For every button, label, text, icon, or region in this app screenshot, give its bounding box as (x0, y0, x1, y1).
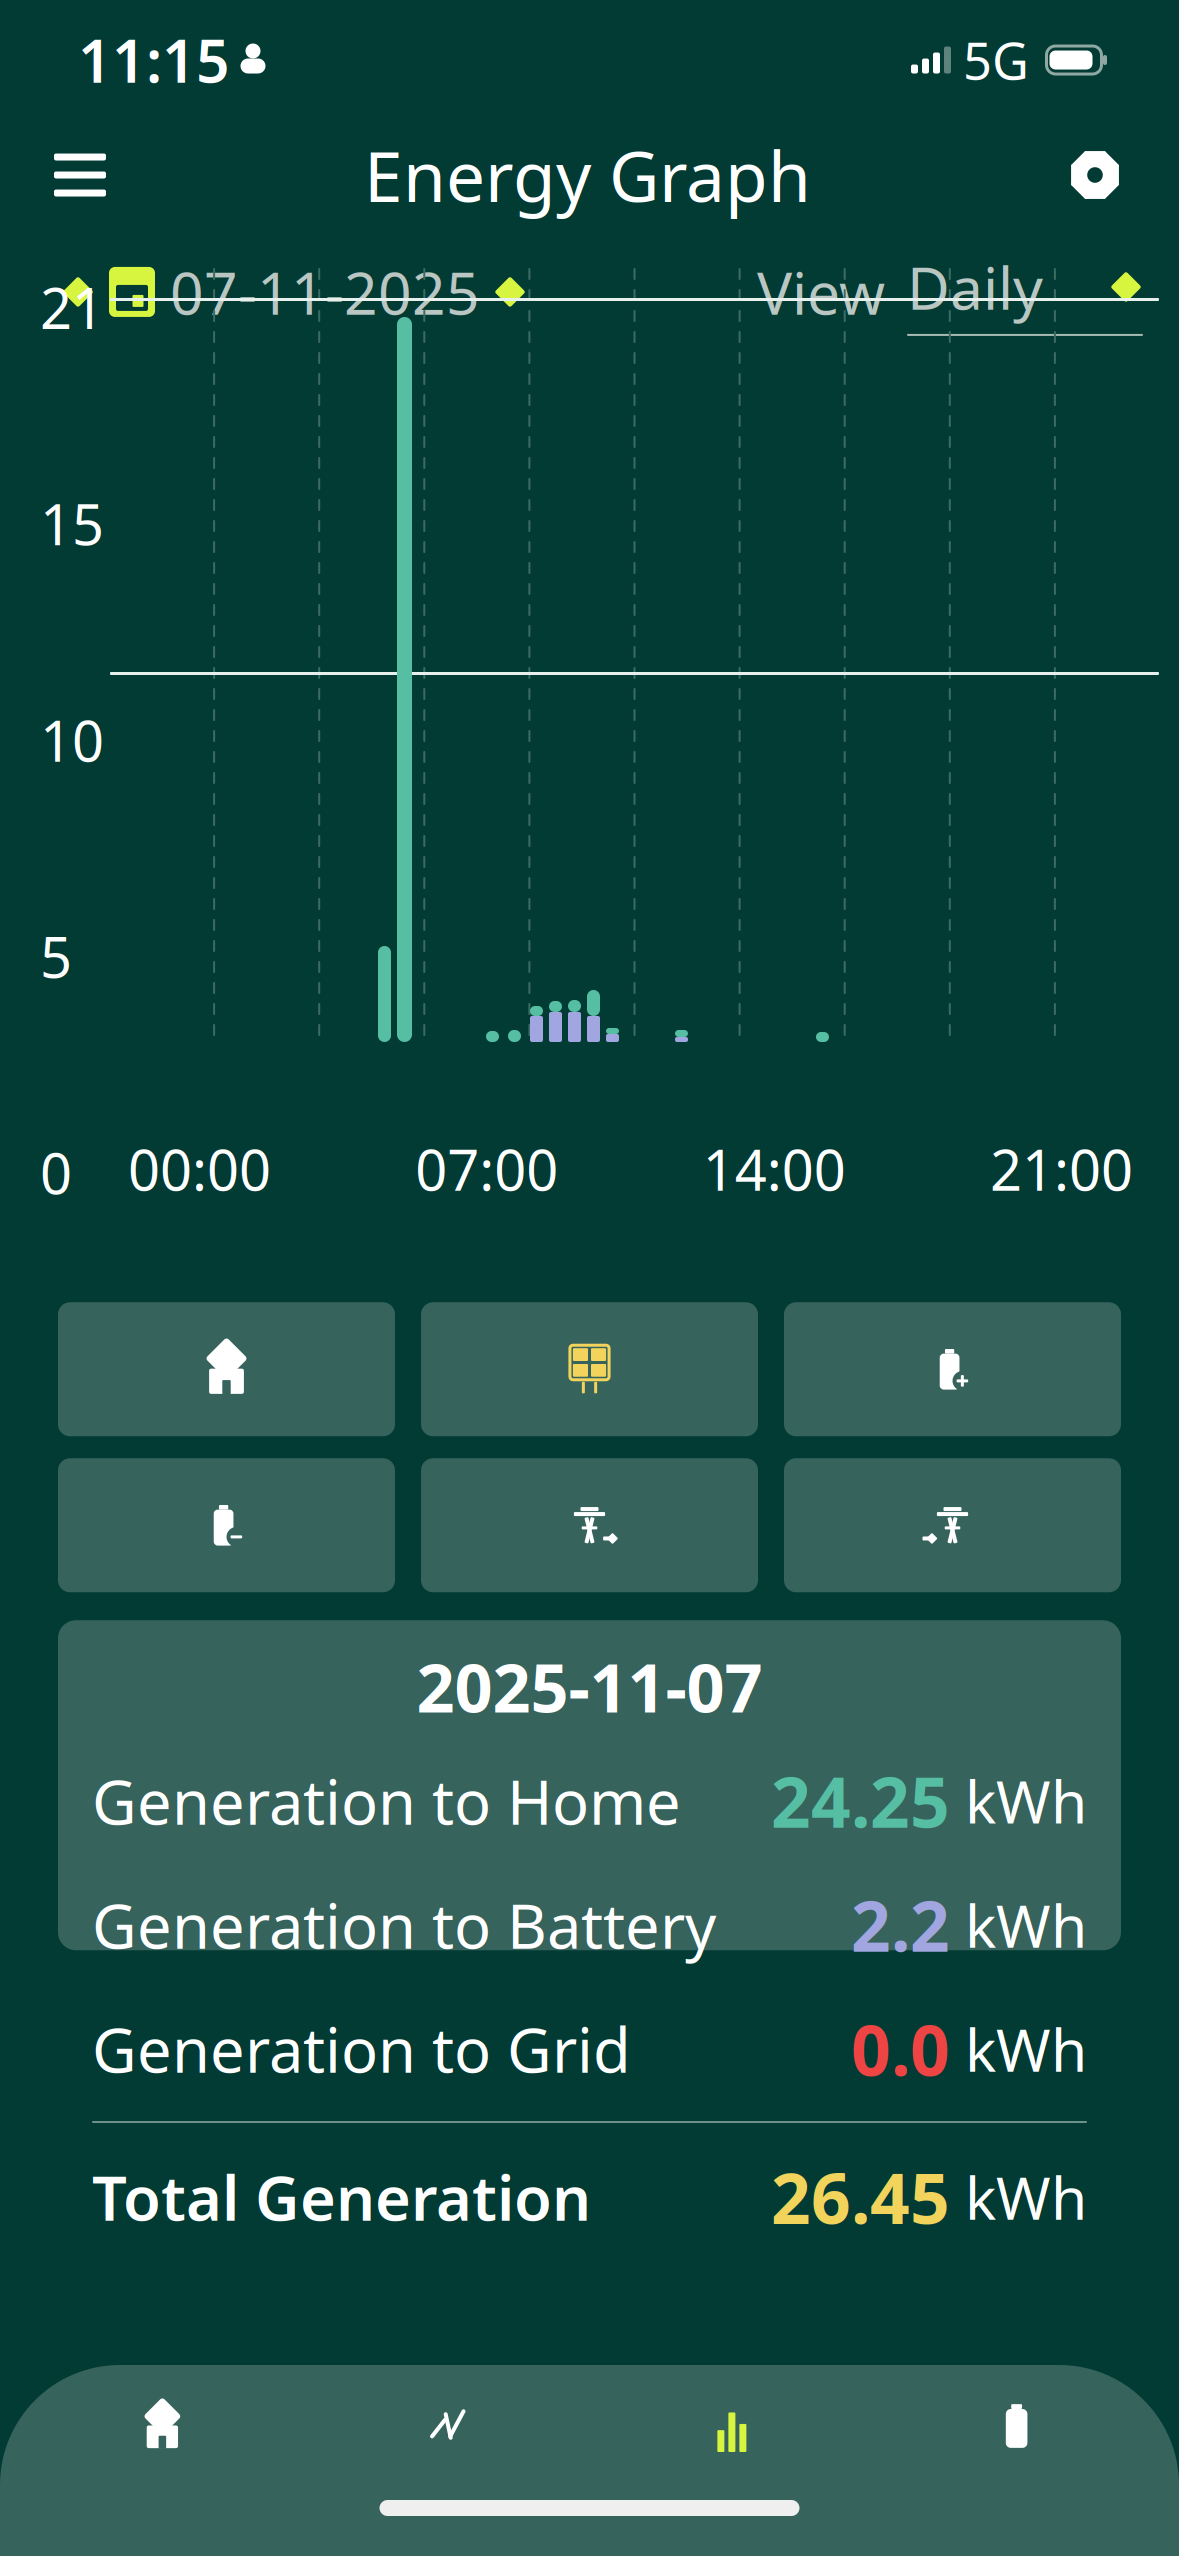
button[interactable]: Energy graph (589, 2371, 874, 2481)
button[interactable]: Battery charge (784, 1302, 1121, 1436)
staticText: 0 (40, 1135, 72, 1210)
staticText: kWh (950, 1762, 1087, 1840)
staticText: 24.25 (771, 1755, 950, 1847)
button[interactable]: Battery (874, 2371, 1159, 2481)
staticText: View (757, 253, 885, 331)
staticText: 07-11-2025 (170, 253, 480, 331)
staticText: 11:15 (78, 21, 230, 99)
button[interactable]: Import from grid (784, 1458, 1121, 1592)
staticText: Generation to Battery (92, 1884, 716, 1966)
button[interactable]: Previous day (48, 262, 108, 322)
staticText: 07:00 (415, 1132, 558, 1206)
staticText: 10 (40, 703, 104, 777)
staticText: 0.0 (851, 2003, 950, 2095)
staticText: Energy Graph (364, 129, 811, 221)
staticText: 5 (40, 919, 72, 993)
button[interactable]: 07-11-2025 (108, 253, 480, 331)
button[interactable]: Generation to home (58, 1302, 395, 1436)
button[interactable]: Battery discharge (58, 1458, 395, 1592)
button[interactable]: Settings (1047, 127, 1143, 223)
button[interactable]: Daily (907, 248, 1143, 336)
staticText: 21 (40, 270, 104, 344)
button[interactable]: Export to grid (421, 1458, 758, 1592)
staticText: Daily (907, 248, 1043, 326)
staticText: 15 (40, 486, 104, 561)
staticText: Total Generation (92, 2156, 591, 2238)
staticText: Generation to Home (92, 1760, 681, 1841)
staticText: 21:00 (990, 1132, 1133, 1206)
staticText: 2.2 (851, 1879, 950, 1971)
button[interactable]: Solar generation (421, 1302, 758, 1436)
staticText: 5G (963, 26, 1029, 94)
staticText: kWh (950, 2010, 1087, 2088)
staticText: kWh (950, 1886, 1087, 1964)
button[interactable]: Menu (32, 127, 128, 223)
staticText: Generation to Grid (92, 2008, 631, 2090)
button[interactable]: Home (20, 2371, 305, 2481)
staticText: 26.45 (771, 2151, 950, 2243)
button[interactable]: Next day (480, 262, 540, 322)
staticText: 2025-11-07 (416, 1642, 762, 1731)
staticText: 00:00 (128, 1132, 271, 1206)
button[interactable]: Live (305, 2371, 590, 2481)
staticText: kWh (950, 2158, 1087, 2236)
staticText: 14:00 (703, 1132, 846, 1206)
